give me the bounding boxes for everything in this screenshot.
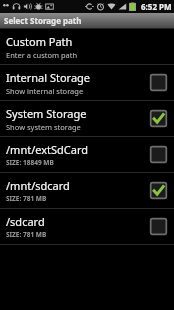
staticText: 6:52 PM <box>141 1 172 12</box>
staticText: /mnt/sdcard <box>6 178 70 193</box>
button[interactable]: Internal Storage <box>0 65 174 100</box>
staticText: SIZE: 781 MB <box>6 230 47 239</box>
staticText: /mnt/extSdCard <box>6 142 89 157</box>
staticText: Enter a custom path <box>6 50 78 60</box>
button[interactable]: System Storage <box>0 101 174 136</box>
staticText: Internal Storage <box>6 70 91 85</box>
button[interactable]: Unchecked <box>149 73 168 92</box>
button[interactable]: Unchecked <box>149 145 168 164</box>
staticText: Show internal storage <box>6 86 84 96</box>
staticText: /sdcard <box>6 214 45 229</box>
button[interactable]: /mnt/extSdCard <box>0 137 174 172</box>
staticText: Select Storage path <box>4 15 82 26</box>
button[interactable]: Checked <box>149 181 168 200</box>
staticText: System Storage <box>6 106 87 121</box>
button[interactable]: Custom Path <box>0 29 174 64</box>
staticText: SIZE: 18849 MB <box>6 158 54 167</box>
button[interactable]: /mnt/sdcard <box>0 173 174 208</box>
button[interactable]: Checked <box>149 109 168 128</box>
button[interactable]: /sdcard <box>0 209 174 244</box>
staticText: SIZE: 781 MB <box>6 194 47 203</box>
button[interactable]: Unchecked <box>149 217 168 236</box>
staticText: Custom Path <box>6 34 73 49</box>
staticText: Show system storage <box>6 122 81 132</box>
